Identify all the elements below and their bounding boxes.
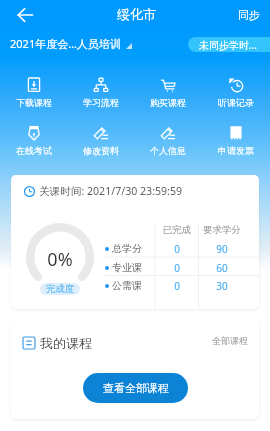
staticText: 0	[155, 279, 199, 293]
staticText: 0	[155, 242, 199, 256]
button[interactable]: 查看全部课程	[83, 373, 188, 403]
staticText: 同步	[238, 8, 260, 22]
staticText: 学习流程	[83, 97, 119, 108]
button[interactable]: 购买课程	[134, 78, 202, 108]
staticText: 全部课程	[212, 335, 248, 346]
button[interactable]: 同步	[224, 2, 270, 28]
staticText: 0	[155, 261, 199, 275]
staticText: 在线考试	[16, 145, 52, 156]
staticText: 0%	[26, 247, 94, 272]
button[interactable]: Back	[12, 2, 37, 27]
button[interactable]: 修改资料	[67, 126, 134, 156]
staticText: 完成度	[46, 283, 75, 295]
button[interactable]: 2021年度会…人员培训	[10, 36, 136, 51]
staticText: 30	[199, 279, 245, 293]
staticText: 绥化市	[117, 6, 156, 22]
staticText: 下载课程	[16, 97, 52, 108]
staticText: 修改资料	[83, 145, 119, 156]
staticText: 2021年度会…人员培训	[10, 36, 121, 51]
staticText: 90	[199, 242, 245, 256]
button[interactable]: 在线考试	[0, 126, 67, 156]
staticText: 公需课	[112, 279, 142, 292]
button[interactable]: 未同步学时…	[188, 37, 270, 52]
staticText: 个人信息	[150, 145, 186, 156]
staticText: 已完成	[155, 224, 199, 236]
staticText: 我的课程	[40, 335, 92, 351]
staticText: 关课时间: 2021/7/30 23:59:59	[39, 184, 183, 198]
staticText: 总学分	[112, 242, 142, 255]
staticText: 60	[199, 261, 245, 275]
staticText: 要求学分	[199, 224, 245, 236]
button[interactable]: 下载课程	[0, 78, 67, 108]
button[interactable]: 申请发票	[202, 126, 270, 156]
button[interactable]: 听课记录	[202, 78, 270, 108]
staticText: 查看全部课程	[103, 381, 169, 395]
button[interactable]: 个人信息	[134, 126, 202, 156]
staticText: 未同步学时…	[199, 38, 257, 52]
button[interactable]: 学习流程	[67, 78, 134, 108]
staticText: 专业课	[112, 261, 142, 274]
staticText: 听课记录	[218, 97, 254, 108]
staticText: 申请发票	[218, 145, 254, 156]
button[interactable]: 全部课程	[200, 330, 259, 351]
staticText: 购买课程	[150, 97, 186, 108]
